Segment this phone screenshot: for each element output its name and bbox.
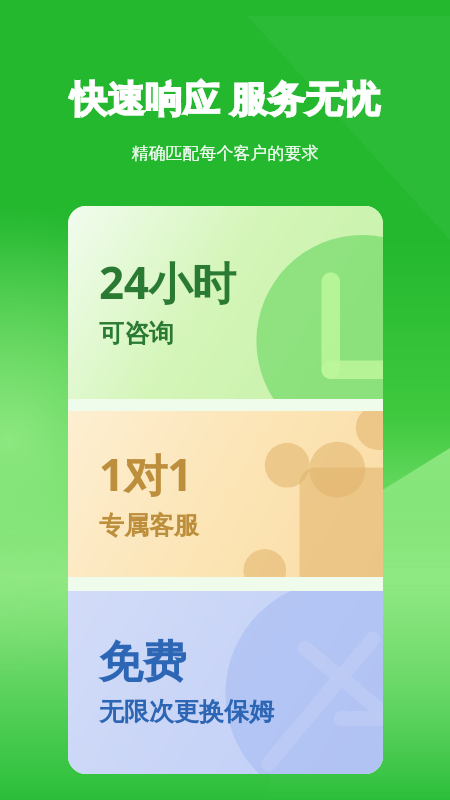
button[interactable]: 1对1专属客服 [68, 411, 383, 577]
button[interactable]: 免费无限次更换保姆 [68, 591, 383, 774]
staticText: 免费 [99, 635, 186, 690]
staticText: 专属客服 [99, 510, 199, 541]
button[interactable]: 24小时可咨询 [68, 206, 383, 399]
staticText: 24小时 [99, 252, 236, 312]
staticText: 快速响应 服务无忧 [0, 72, 450, 123]
staticText: 无限次更换保姆 [99, 696, 274, 727]
staticText: 可咨询 [99, 318, 174, 349]
staticText: 精确匹配每个客户的要求 [0, 143, 450, 164]
staticText: 1对1 [99, 444, 192, 504]
